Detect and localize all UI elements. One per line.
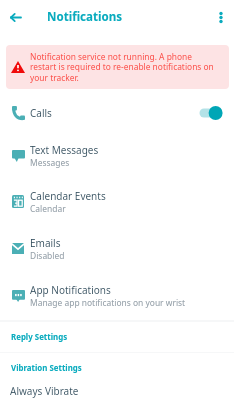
- button[interactable]: Calls: [0, 93, 234, 133]
- staticText: Reply Settings: [11, 332, 68, 343]
- staticText: Always Vibrate: [10, 384, 79, 398]
- staticText: Messages: [30, 157, 70, 169]
- button[interactable]: Vibration Settings: [0, 353, 234, 383]
- staticText: App Notifications: [30, 283, 111, 297]
- button[interactable]: Back: [2, 4, 28, 30]
- button[interactable]: More options: [207, 4, 233, 30]
- staticText: Notifications: [47, 9, 123, 25]
- staticText: Emails: [30, 236, 61, 250]
- staticText: Calendar Events: [30, 189, 106, 203]
- staticText: Disabled: [30, 250, 65, 262]
- staticText: Vibration Settings: [11, 363, 82, 374]
- staticText: Calendar: [30, 203, 66, 215]
- button[interactable]: Toggle Calls: [196, 93, 234, 133]
- staticText: Notification service not running. A phon…: [30, 51, 220, 84]
- button[interactable]: Text Messages: [0, 132, 234, 179]
- button[interactable]: Calendar Events: [0, 178, 234, 225]
- staticText: Manage app notifications on your wrist: [30, 297, 186, 309]
- button[interactable]: Emails: [0, 225, 234, 272]
- button[interactable]: App Notifications: [0, 272, 234, 319]
- button[interactable]: Always Vibrate: [0, 383, 234, 399]
- staticText: Calls: [30, 106, 52, 120]
- button[interactable]: Reply Settings: [0, 321, 234, 353]
- staticText: Text Messages: [30, 143, 99, 157]
